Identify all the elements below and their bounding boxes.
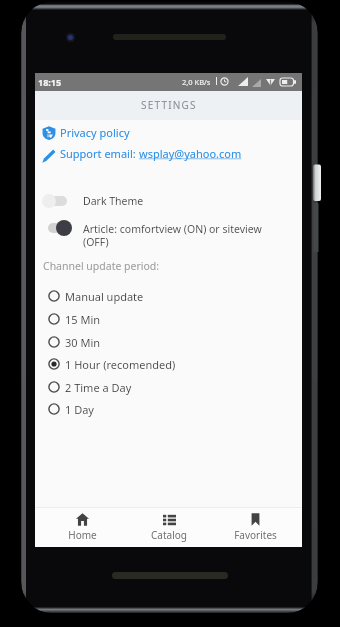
button[interactable]: Privacy policy xyxy=(35,122,302,143)
staticText: Manual update xyxy=(65,289,144,304)
other: Favorites xyxy=(249,513,262,526)
other: Home xyxy=(76,513,89,526)
button[interactable]: 2 Time a Day xyxy=(35,376,302,398)
staticText: Home xyxy=(68,528,97,542)
staticText: wsplay@yahoo.com xyxy=(139,146,242,161)
staticText: 1 Hour (recomended) xyxy=(65,357,176,372)
button[interactable]: Article: comfortview (ON) or siteview (O… xyxy=(35,215,302,249)
button[interactable]: Catalog xyxy=(129,508,209,547)
staticText: Channel update period: xyxy=(43,259,160,273)
button[interactable]: Manual update xyxy=(35,285,302,307)
staticText: 18:15 xyxy=(38,76,62,88)
button[interactable]: 30 Min xyxy=(35,331,302,353)
button[interactable]: 15 Min xyxy=(35,308,302,330)
staticText: 2,0 KB/s xyxy=(182,77,211,87)
staticText: Dark Theme xyxy=(83,194,273,208)
staticText: Privacy policy xyxy=(60,125,130,140)
button[interactable]: Support email: xyxy=(35,143,302,164)
staticText: 15 Min xyxy=(65,312,101,327)
button[interactable]: Dark Theme xyxy=(35,188,302,214)
button[interactable]: Favorites xyxy=(215,508,295,547)
staticText: Support email: xyxy=(60,146,139,161)
staticText: Article: comfortview (ON) or siteview (O… xyxy=(83,222,273,249)
staticText: Catalog xyxy=(151,528,187,542)
staticText: 30 Min xyxy=(65,335,101,350)
staticText: Favorites xyxy=(234,528,277,542)
staticText: 1 Day xyxy=(65,402,94,417)
button[interactable]: 1 Hour (recomended) xyxy=(35,353,302,375)
staticText: 2 Time a Day xyxy=(65,380,132,395)
staticText: SETTINGS xyxy=(141,98,197,112)
other: Catalog xyxy=(163,513,176,526)
button[interactable]: Home xyxy=(42,508,122,547)
button[interactable]: 1 Day xyxy=(35,398,302,420)
